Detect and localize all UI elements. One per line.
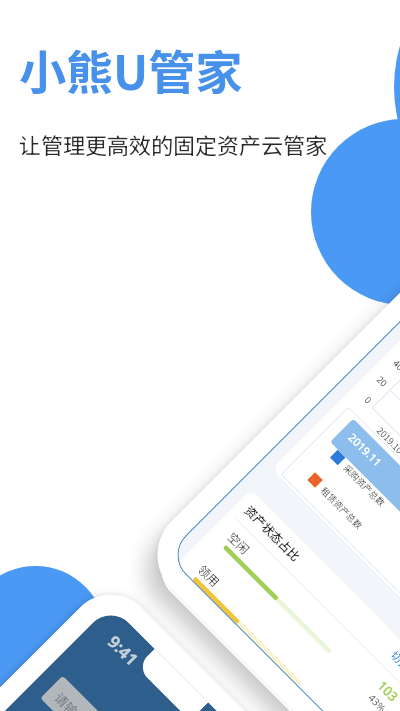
staticText: 43%	[365, 691, 389, 711]
staticText: 2019.10	[374, 424, 400, 457]
staticText: 2019.11	[345, 430, 385, 469]
staticText: 切换	[388, 647, 400, 674]
staticText: 空闲	[225, 528, 254, 558]
staticText: 小熊U管家	[19, 35, 243, 103]
staticText: 请输入关键字	[51, 688, 120, 711]
staticText: 9:41	[103, 630, 143, 671]
staticText: 20	[374, 373, 390, 390]
staticText: 0	[362, 394, 374, 406]
staticText: 租赁资产总数	[318, 484, 366, 532]
staticText: 40	[390, 357, 400, 373]
staticText: 103	[374, 677, 400, 706]
staticText: 资产状态占比	[241, 501, 305, 565]
staticText: 领用	[195, 561, 225, 590]
staticText: 采购资产总数	[340, 462, 389, 510]
staticText: 让管理更高效的固定资产云管家	[19, 128, 328, 160]
